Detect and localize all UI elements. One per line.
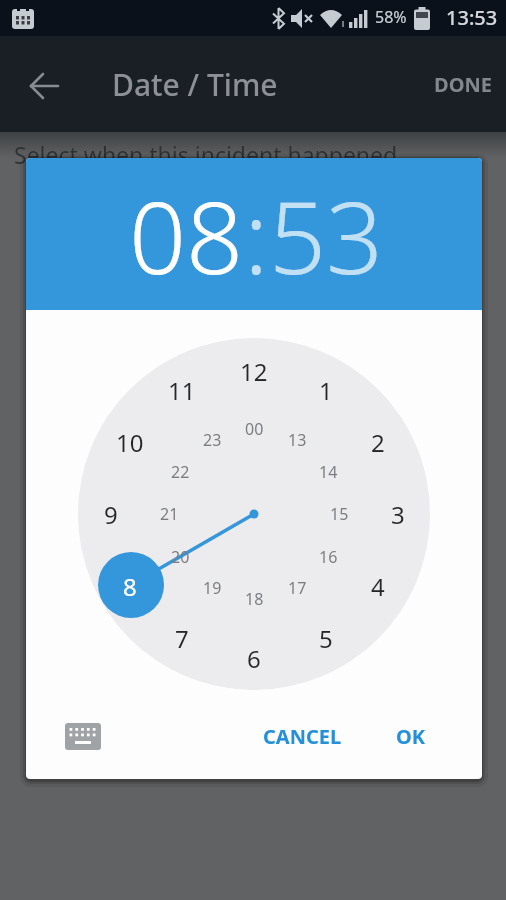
staticText: 7 [175,622,189,655]
staticText: 4 [371,570,385,603]
staticText: 00 [245,418,264,440]
staticText: 2 [371,426,385,459]
staticText: 22 [171,461,190,483]
button[interactable] [16,64,72,108]
staticText: 3 [391,498,405,531]
staticText: 19 [203,577,222,599]
staticText: 53 [269,167,384,303]
button[interactable]: DONE [424,62,502,106]
staticText: 9 [104,498,118,531]
staticText: 14 [319,461,338,483]
staticText: 10 [116,426,144,459]
staticText: 15 [330,503,349,525]
button[interactable] [60,714,106,758]
staticText: 1 [319,374,333,407]
staticText: 6 [247,642,261,675]
staticText: CANCEL [263,723,342,750]
staticText: 8 [123,570,137,603]
staticText: 18 [245,588,264,610]
staticText: 5 [319,622,333,655]
staticText: 13:53 [446,4,498,31]
staticText: 20 [171,546,190,568]
staticText: Select when this incident happened [14,139,398,170]
staticText: 12 [240,355,268,388]
staticText: 13 [288,429,307,451]
staticText: 21 [160,503,179,525]
button[interactable]: CANCEL [257,716,347,756]
staticText: 58% [375,6,407,28]
staticText: DONE [434,71,492,98]
staticText: 11 [168,374,196,407]
staticText: 23 [203,429,222,451]
button[interactable]: OK [366,716,456,756]
staticText: OK [396,723,426,750]
staticText: 08 [129,167,244,303]
staticText: : [244,167,269,303]
staticText: 17 [288,577,307,599]
staticText: 16 [319,546,338,568]
staticText: Date / Time [112,64,278,105]
